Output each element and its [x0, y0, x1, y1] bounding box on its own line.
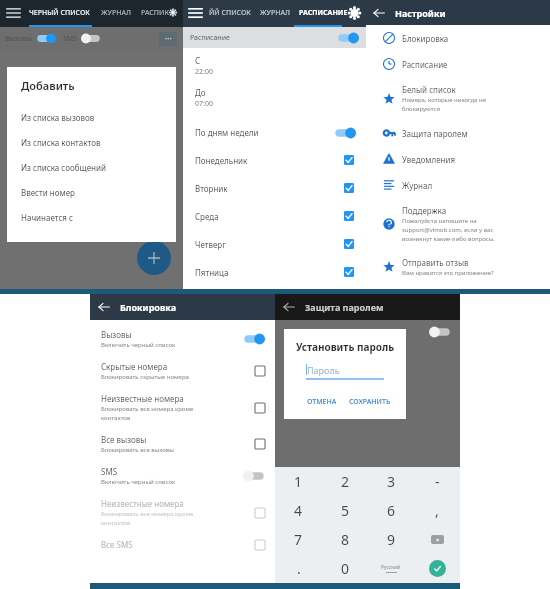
button[interactable]	[81, 33, 101, 44]
button[interactable]: 0	[322, 554, 368, 583]
button[interactable]: Menu	[189, 8, 202, 18]
button[interactable]: Понедельник	[195, 146, 356, 174]
button[interactable]: Back	[373, 7, 385, 19]
button[interactable]: Расписание	[183, 27, 366, 48]
button[interactable]: Back	[283, 301, 295, 313]
staticText: Все SMS	[101, 539, 133, 550]
button[interactable]: Неизвестные номера	[90, 492, 275, 533]
button[interactable]: ✓	[414, 554, 460, 583]
staticText: Расписание	[402, 59, 448, 70]
button[interactable]: ЖУРНАЛ	[101, 8, 131, 18]
staticText: SMS	[101, 466, 118, 477]
button[interactable]: -	[414, 467, 460, 496]
button[interactable]: 1	[275, 467, 322, 496]
staticText: 1	[294, 472, 303, 491]
button[interactable]	[36, 33, 56, 44]
button[interactable]: .	[275, 554, 322, 583]
staticText: Отправить отзыв	[402, 257, 469, 268]
button[interactable]: Неизвестные номера	[90, 387, 275, 428]
button[interactable]	[344, 239, 354, 249]
staticText: ×	[436, 536, 440, 544]
staticText: Расписание	[190, 33, 230, 43]
staticText: Пятница	[195, 267, 229, 278]
button[interactable]: Среда	[195, 202, 356, 230]
staticText: Журнал	[402, 180, 433, 191]
button[interactable]: Ввести номер	[21, 180, 176, 205]
button[interactable]: ЙЙ СПИСОК	[209, 8, 251, 18]
button[interactable]: Из списка сообщений	[21, 155, 176, 180]
button[interactable]: Пятница	[195, 258, 356, 286]
staticText: Среда	[195, 211, 219, 222]
button[interactable]: More options	[159, 32, 177, 46]
staticText: СОХРАНИТЬ	[349, 397, 391, 407]
staticText: Добавить	[21, 78, 75, 93]
button[interactable]: 7	[275, 525, 322, 554]
button[interactable]: Блокировка	[366, 25, 550, 51]
button[interactable]	[344, 155, 354, 165]
button[interactable]	[255, 403, 265, 413]
button[interactable]: Из списка вызовов	[21, 105, 176, 130]
button[interactable]: Settings	[169, 6, 177, 19]
button[interactable]: 5	[322, 496, 368, 525]
button[interactable]: ЖУРНАЛ	[260, 8, 290, 18]
button[interactable]: РАСПИСАНИЕ	[299, 8, 348, 18]
staticText: .	[297, 559, 301, 578]
button[interactable]	[344, 183, 354, 193]
button[interactable]: Уведомления	[366, 146, 550, 172]
button[interactable]: До	[195, 87, 356, 119]
button[interactable]: 4	[275, 496, 322, 525]
button[interactable]: 8	[322, 525, 368, 554]
button[interactable]	[255, 439, 265, 449]
button[interactable]	[429, 326, 451, 338]
button[interactable]: Поддержка	[366, 198, 550, 250]
button[interactable]: Отправить отзыв	[366, 250, 550, 284]
button[interactable]: Расписание	[366, 51, 550, 77]
button[interactable]: ЧЕРНЫЙ СПИСОК	[29, 8, 90, 18]
button[interactable]: РАСПИК	[141, 8, 169, 18]
staticText: Из списка сообщений	[21, 162, 106, 173]
button[interactable]	[344, 267, 354, 277]
button[interactable]: Начинается с	[21, 205, 176, 230]
button[interactable]	[255, 366, 265, 376]
staticText: Уведомления	[402, 154, 456, 165]
button[interactable]: 3	[368, 467, 414, 496]
button[interactable]: SMS	[90, 460, 275, 492]
button[interactable]	[337, 32, 359, 44]
button[interactable]: Settings	[348, 6, 361, 20]
button[interactable]: 2	[322, 467, 368, 496]
button[interactable]: Все SMS	[90, 533, 275, 556]
button[interactable]	[344, 211, 354, 221]
staticText: С	[195, 55, 201, 66]
button[interactable]: Защита паролем	[366, 120, 550, 146]
button[interactable]: 6	[368, 496, 414, 525]
button[interactable]	[243, 333, 265, 345]
button[interactable]: Вызовы	[90, 323, 275, 355]
button[interactable]: 9	[368, 525, 414, 554]
staticText: Начинается с	[21, 212, 73, 223]
button[interactable]: Белый список	[366, 77, 550, 120]
button[interactable]: Скрытые номера	[90, 355, 275, 387]
button[interactable]	[243, 470, 265, 482]
button[interactable]	[334, 127, 356, 139]
button[interactable]: Menu	[7, 8, 20, 18]
button[interactable]: Все вызовы	[90, 428, 275, 460]
button[interactable]: ОТМЕНА	[303, 393, 341, 411]
button[interactable]: Русский	[368, 554, 414, 583]
staticText: Включить черный список	[101, 341, 176, 349]
button[interactable]: С	[195, 55, 356, 87]
button[interactable]: Back	[98, 301, 110, 313]
staticText: 2	[341, 472, 350, 491]
button[interactable]	[255, 508, 265, 518]
button[interactable]: Add	[137, 241, 171, 275]
button[interactable]: ⌫	[414, 525, 460, 554]
button[interactable]: СОХРАНИТЬ	[345, 393, 395, 411]
button[interactable]: Из списка контактов	[21, 130, 176, 155]
button[interactable]	[255, 540, 265, 550]
button[interactable]: Четверг	[195, 230, 356, 258]
button[interactable]: Вторник	[195, 174, 356, 202]
staticText: 4	[294, 501, 303, 520]
button[interactable]: ,	[414, 496, 460, 525]
button[interactable]: Журнал	[366, 172, 550, 198]
staticText: Из списка контактов	[21, 137, 101, 148]
button[interactable]: По дням недели	[195, 119, 356, 146]
